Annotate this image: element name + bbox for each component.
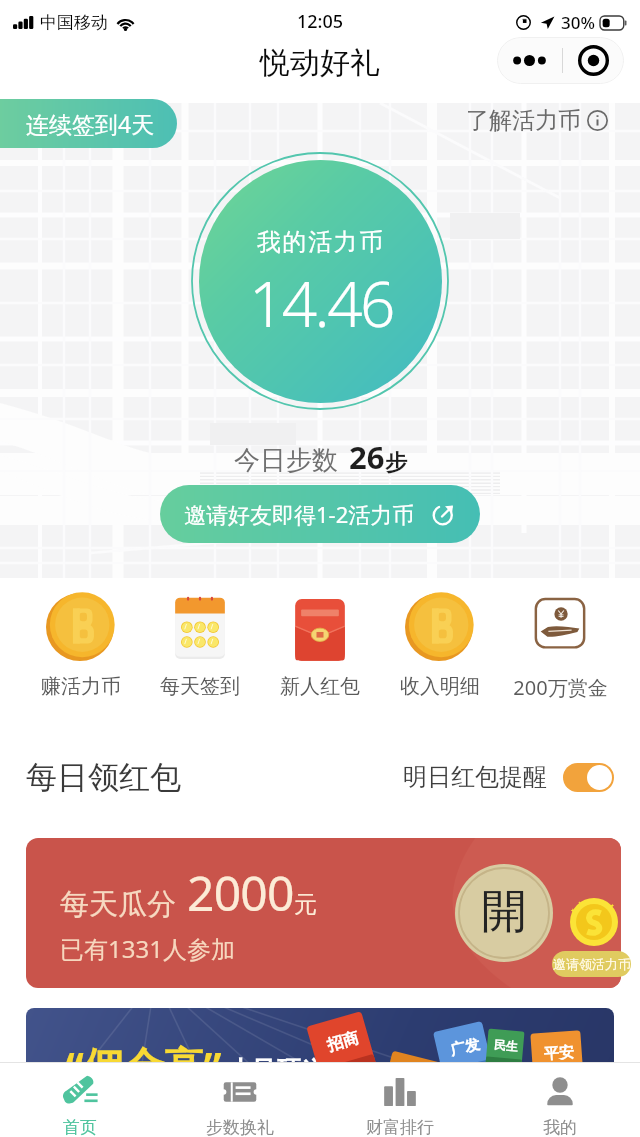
staticText: 步数换礼 xyxy=(206,1117,274,1137)
button[interactable]: 财富排行 xyxy=(340,1063,460,1137)
button[interactable]: 首页 xyxy=(20,1063,140,1137)
staticText: 广发 xyxy=(448,1035,482,1060)
button[interactable]: 每天瓜分 xyxy=(26,838,621,988)
staticText: 邀请好友即得1-2活力币 xyxy=(184,499,415,529)
staticText: 才是硬道理 xyxy=(224,1055,354,1088)
staticText: 14.46 xyxy=(249,261,393,345)
button[interactable]: 我的 xyxy=(500,1063,620,1137)
staticText: 每日领红包 xyxy=(26,758,181,797)
staticText: 平安 xyxy=(543,1043,575,1064)
button[interactable]: 新人红包 xyxy=(260,591,380,699)
staticText: 首页 xyxy=(63,1117,97,1137)
staticText: 民生 xyxy=(493,1037,519,1054)
staticText: 赚活力币 xyxy=(41,674,121,699)
staticText: 新人红包 xyxy=(280,674,360,699)
staticText: 2000 xyxy=(187,860,294,925)
button[interactable]: 赚活力币 xyxy=(21,591,141,699)
staticText: 连续签到4天 xyxy=(26,108,155,139)
staticText: 30% xyxy=(561,11,595,34)
button[interactable]: 收入明细 xyxy=(380,591,500,699)
staticText: 步 xyxy=(385,449,407,477)
button[interactable]: 连续签到4天 xyxy=(0,99,177,148)
button[interactable]: 邀请领活力币 xyxy=(552,951,631,977)
button[interactable]: Tomorrow red packet reminder toggle xyxy=(563,763,614,792)
staticText: 元 xyxy=(294,890,317,919)
button[interactable]: 200万赏金 xyxy=(500,591,620,701)
staticText: 财富排行 xyxy=(366,1117,434,1137)
staticText: “佣金高” xyxy=(66,1038,222,1093)
staticText: 明日红包提醒 xyxy=(403,762,547,792)
staticText: 每天瓜分 xyxy=(60,886,176,923)
staticText: 光大 xyxy=(397,1067,429,1091)
staticText: 今日步数 xyxy=(234,444,338,477)
staticText: 已有1331人参加 xyxy=(60,932,235,965)
button[interactable]: 開 xyxy=(455,864,553,962)
staticText: 中国移动 xyxy=(40,12,108,33)
button[interactable]: 我的活力币 xyxy=(199,160,442,403)
staticText: 12:05 xyxy=(297,9,344,34)
staticText: 收入明细 xyxy=(400,674,480,699)
button[interactable]: 步数换礼 xyxy=(180,1063,300,1137)
button[interactable]: More options xyxy=(497,37,562,84)
staticText: 每天签到 xyxy=(160,674,240,699)
staticText: 200万赏金 xyxy=(513,674,608,701)
staticText: 26 xyxy=(349,436,385,478)
staticText: 邀请领活力币 xyxy=(553,956,631,972)
staticText: 了解活力币 xyxy=(466,106,581,135)
button[interactable]: Close mini program xyxy=(563,37,624,84)
button[interactable]: “佣金高” xyxy=(26,1008,614,1108)
staticText: 開 xyxy=(481,883,527,941)
staticText: 招商 xyxy=(325,1028,361,1056)
button[interactable]: 每天签到 xyxy=(140,591,260,699)
staticText: 我的 xyxy=(543,1117,577,1137)
staticText: 我的活力币 xyxy=(257,227,385,257)
staticText: 悦动好礼 xyxy=(260,44,380,82)
button[interactable]: 邀请好友即得1-2活力币 xyxy=(160,485,480,543)
button[interactable]: 了解活力币 xyxy=(466,106,608,135)
